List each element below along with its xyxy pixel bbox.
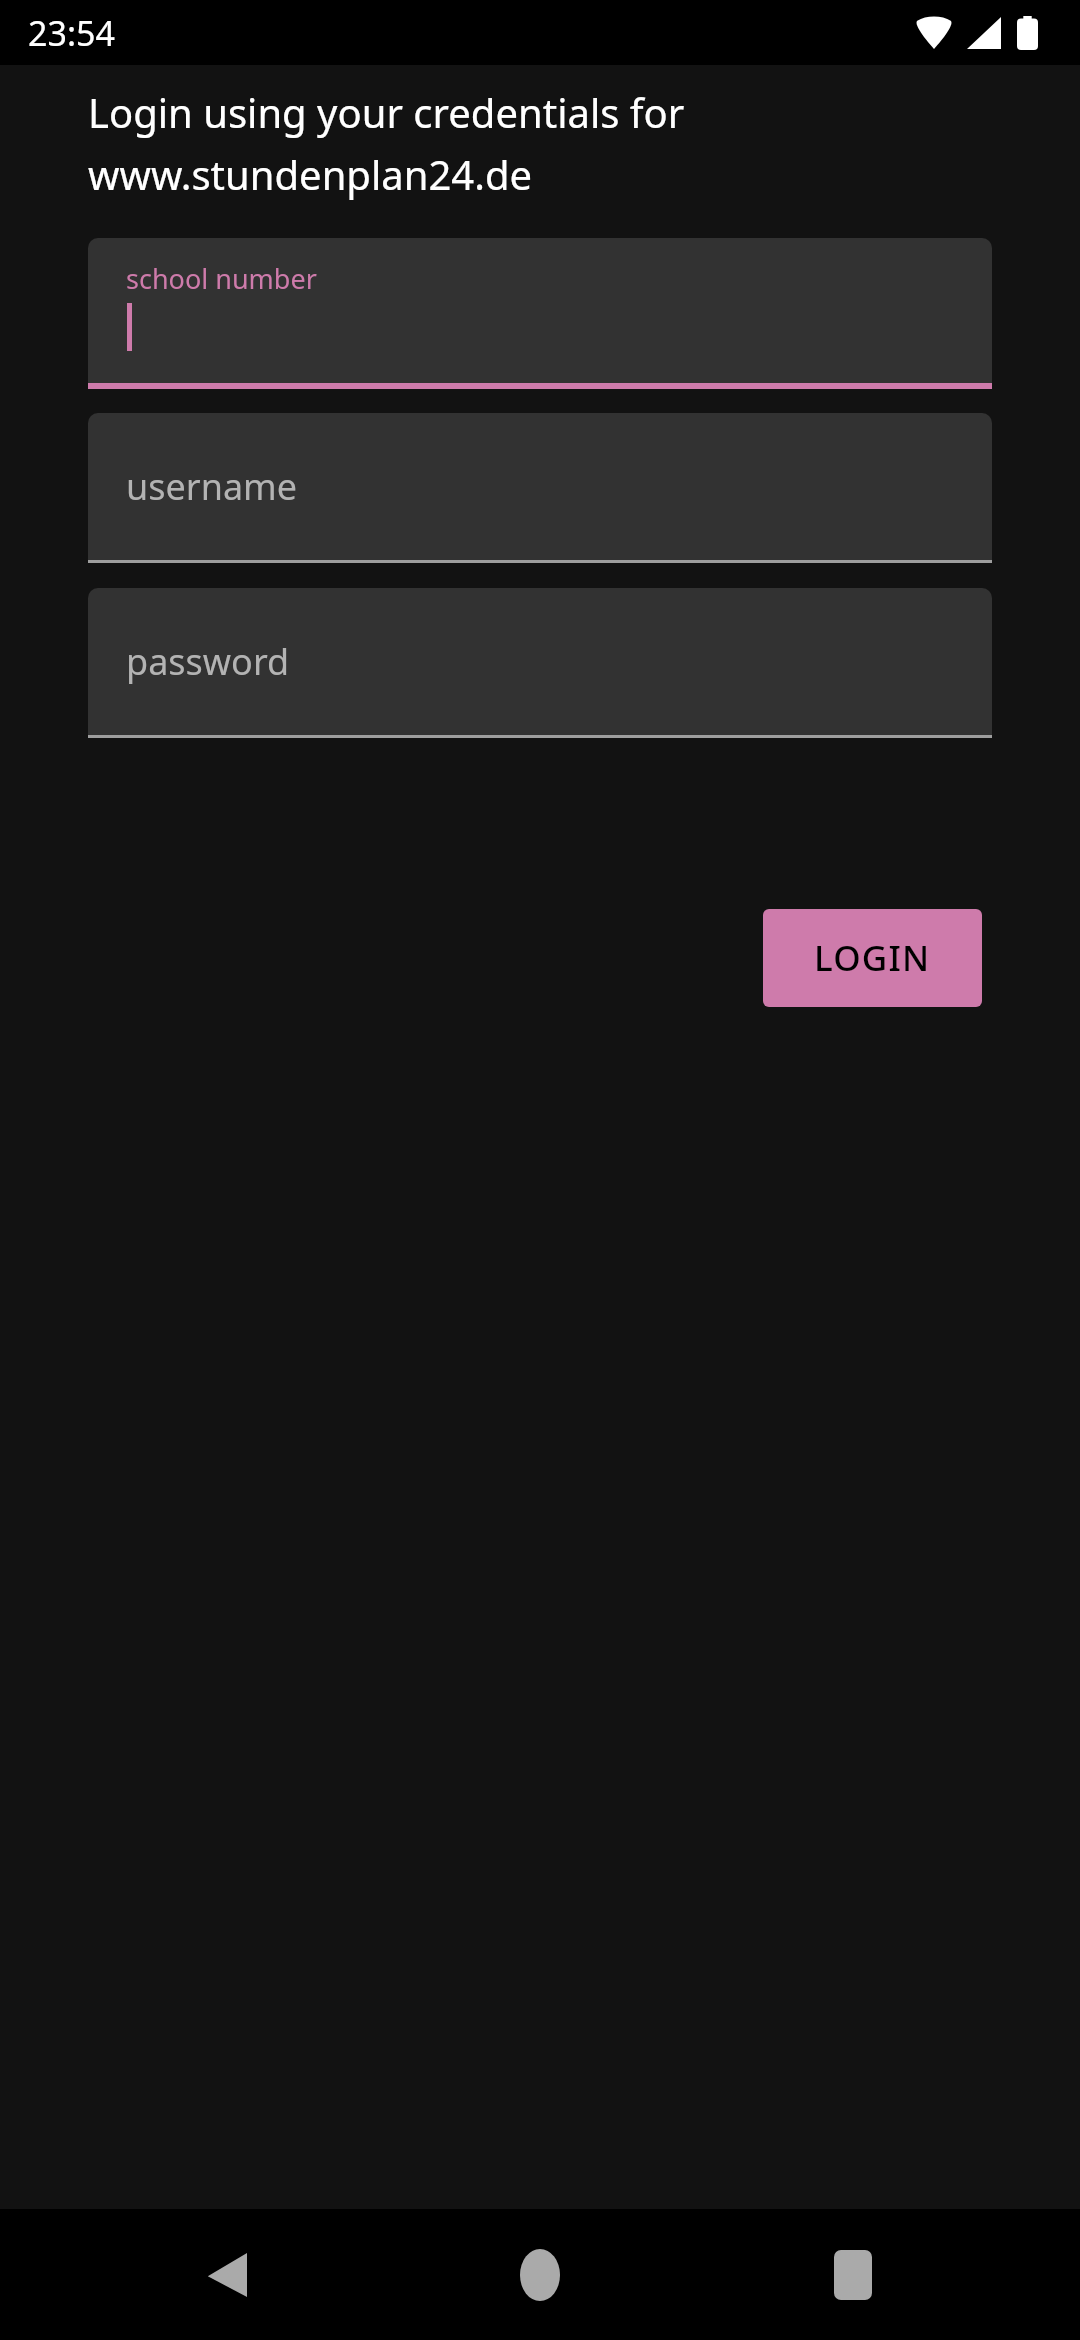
button[interactable]: password [88, 588, 992, 738]
staticText: school number [126, 260, 317, 297]
staticText: Login using your credentials for www.stu… [88, 85, 685, 201]
staticText: password [126, 637, 290, 686]
button[interactable]: Back [157, 2209, 297, 2340]
button[interactable]: LOGIN [763, 909, 982, 1007]
button[interactable]: school number [88, 238, 992, 389]
button[interactable]: username [88, 413, 992, 563]
staticText: username [126, 462, 298, 511]
button[interactable]: Recent apps [783, 2209, 923, 2340]
staticText: LOGIN [814, 934, 931, 982]
staticText: 23:54 [28, 10, 115, 56]
button[interactable]: Home [470, 2209, 610, 2340]
